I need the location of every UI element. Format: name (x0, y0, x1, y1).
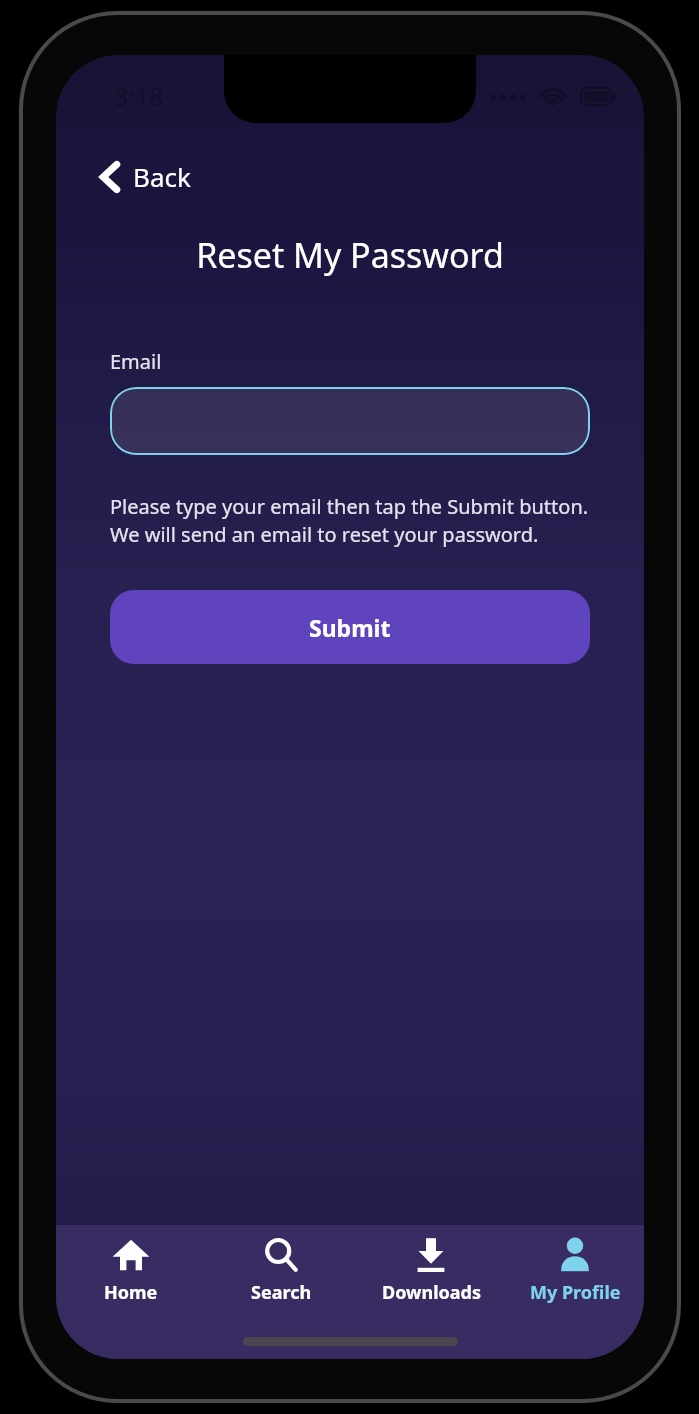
staticText: Submit (309, 612, 391, 643)
staticText: Please type your email then tap the Subm… (110, 493, 590, 548)
button[interactable]: Downloads (356, 1235, 506, 1323)
button[interactable]: Search (206, 1235, 356, 1323)
staticText: Downloads (382, 1280, 481, 1305)
button[interactable]: My Profile (506, 1235, 644, 1323)
button[interactable]: Submit (110, 590, 590, 664)
staticText: Email (110, 348, 162, 375)
button[interactable]: Home (56, 1235, 206, 1323)
button[interactable]: Email input field (110, 387, 590, 455)
staticText: Home (104, 1280, 158, 1305)
staticText: Back (133, 159, 191, 194)
button[interactable]: Back (88, 151, 203, 202)
staticText: Search (251, 1280, 312, 1305)
staticText: Reset My Password (56, 232, 644, 278)
staticText: 3:18 (114, 79, 164, 113)
staticText: My Profile (530, 1280, 621, 1305)
